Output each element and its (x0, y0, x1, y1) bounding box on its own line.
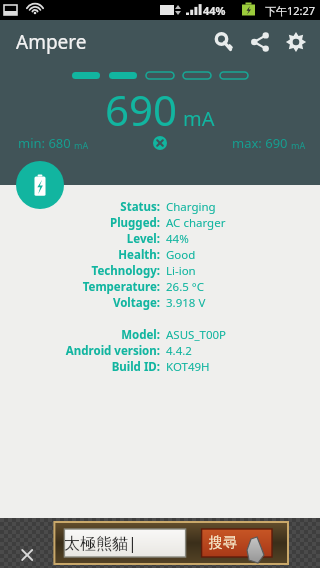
staticText: mA (74, 139, 89, 151)
staticText: Li-ion (166, 263, 196, 279)
staticText: 44% (203, 3, 226, 18)
staticText: 44% (166, 231, 189, 247)
button[interactable]: Reset (147, 130, 173, 156)
staticText: Temperature: (82, 279, 160, 295)
staticText: 3.918 V (166, 295, 206, 311)
staticText: Charging (166, 199, 216, 215)
staticText: 下午12:27 (265, 3, 316, 18)
staticText: mA (291, 139, 306, 151)
staticText: Voltage: (112, 295, 160, 311)
staticText: mA (183, 105, 215, 132)
staticText: 4.4.2 (166, 343, 192, 359)
staticText: Health: (118, 247, 160, 263)
staticText: AC charger (166, 215, 226, 231)
staticText: 搜尋 (209, 534, 237, 552)
button[interactable]: Charging (16, 161, 64, 209)
staticText: min: 680 (18, 134, 71, 152)
staticText: Model: (121, 327, 160, 343)
staticText: Technology: (91, 263, 160, 279)
button[interactable]: Settings (278, 24, 314, 60)
staticText: Plugged: (110, 215, 160, 231)
staticText: Build ID: (111, 359, 160, 375)
staticText: ASUS_T00P (166, 327, 226, 343)
staticText: 太極熊貓| (64, 532, 137, 554)
staticText: Level: (126, 231, 160, 247)
staticText: Status: (120, 199, 160, 215)
staticText: Android version: (65, 343, 160, 359)
button[interactable]: Share (242, 24, 278, 60)
staticText: KOT49H (166, 359, 210, 375)
staticText: max: 690 (232, 134, 288, 152)
staticText: 26.5 °C (166, 279, 204, 295)
button[interactable]: Key (206, 24, 242, 60)
button[interactable]: 太極熊貓| (0, 518, 320, 568)
staticText: Ampere (16, 29, 87, 55)
staticText: 690 (105, 81, 178, 138)
staticText: Good (166, 247, 196, 263)
